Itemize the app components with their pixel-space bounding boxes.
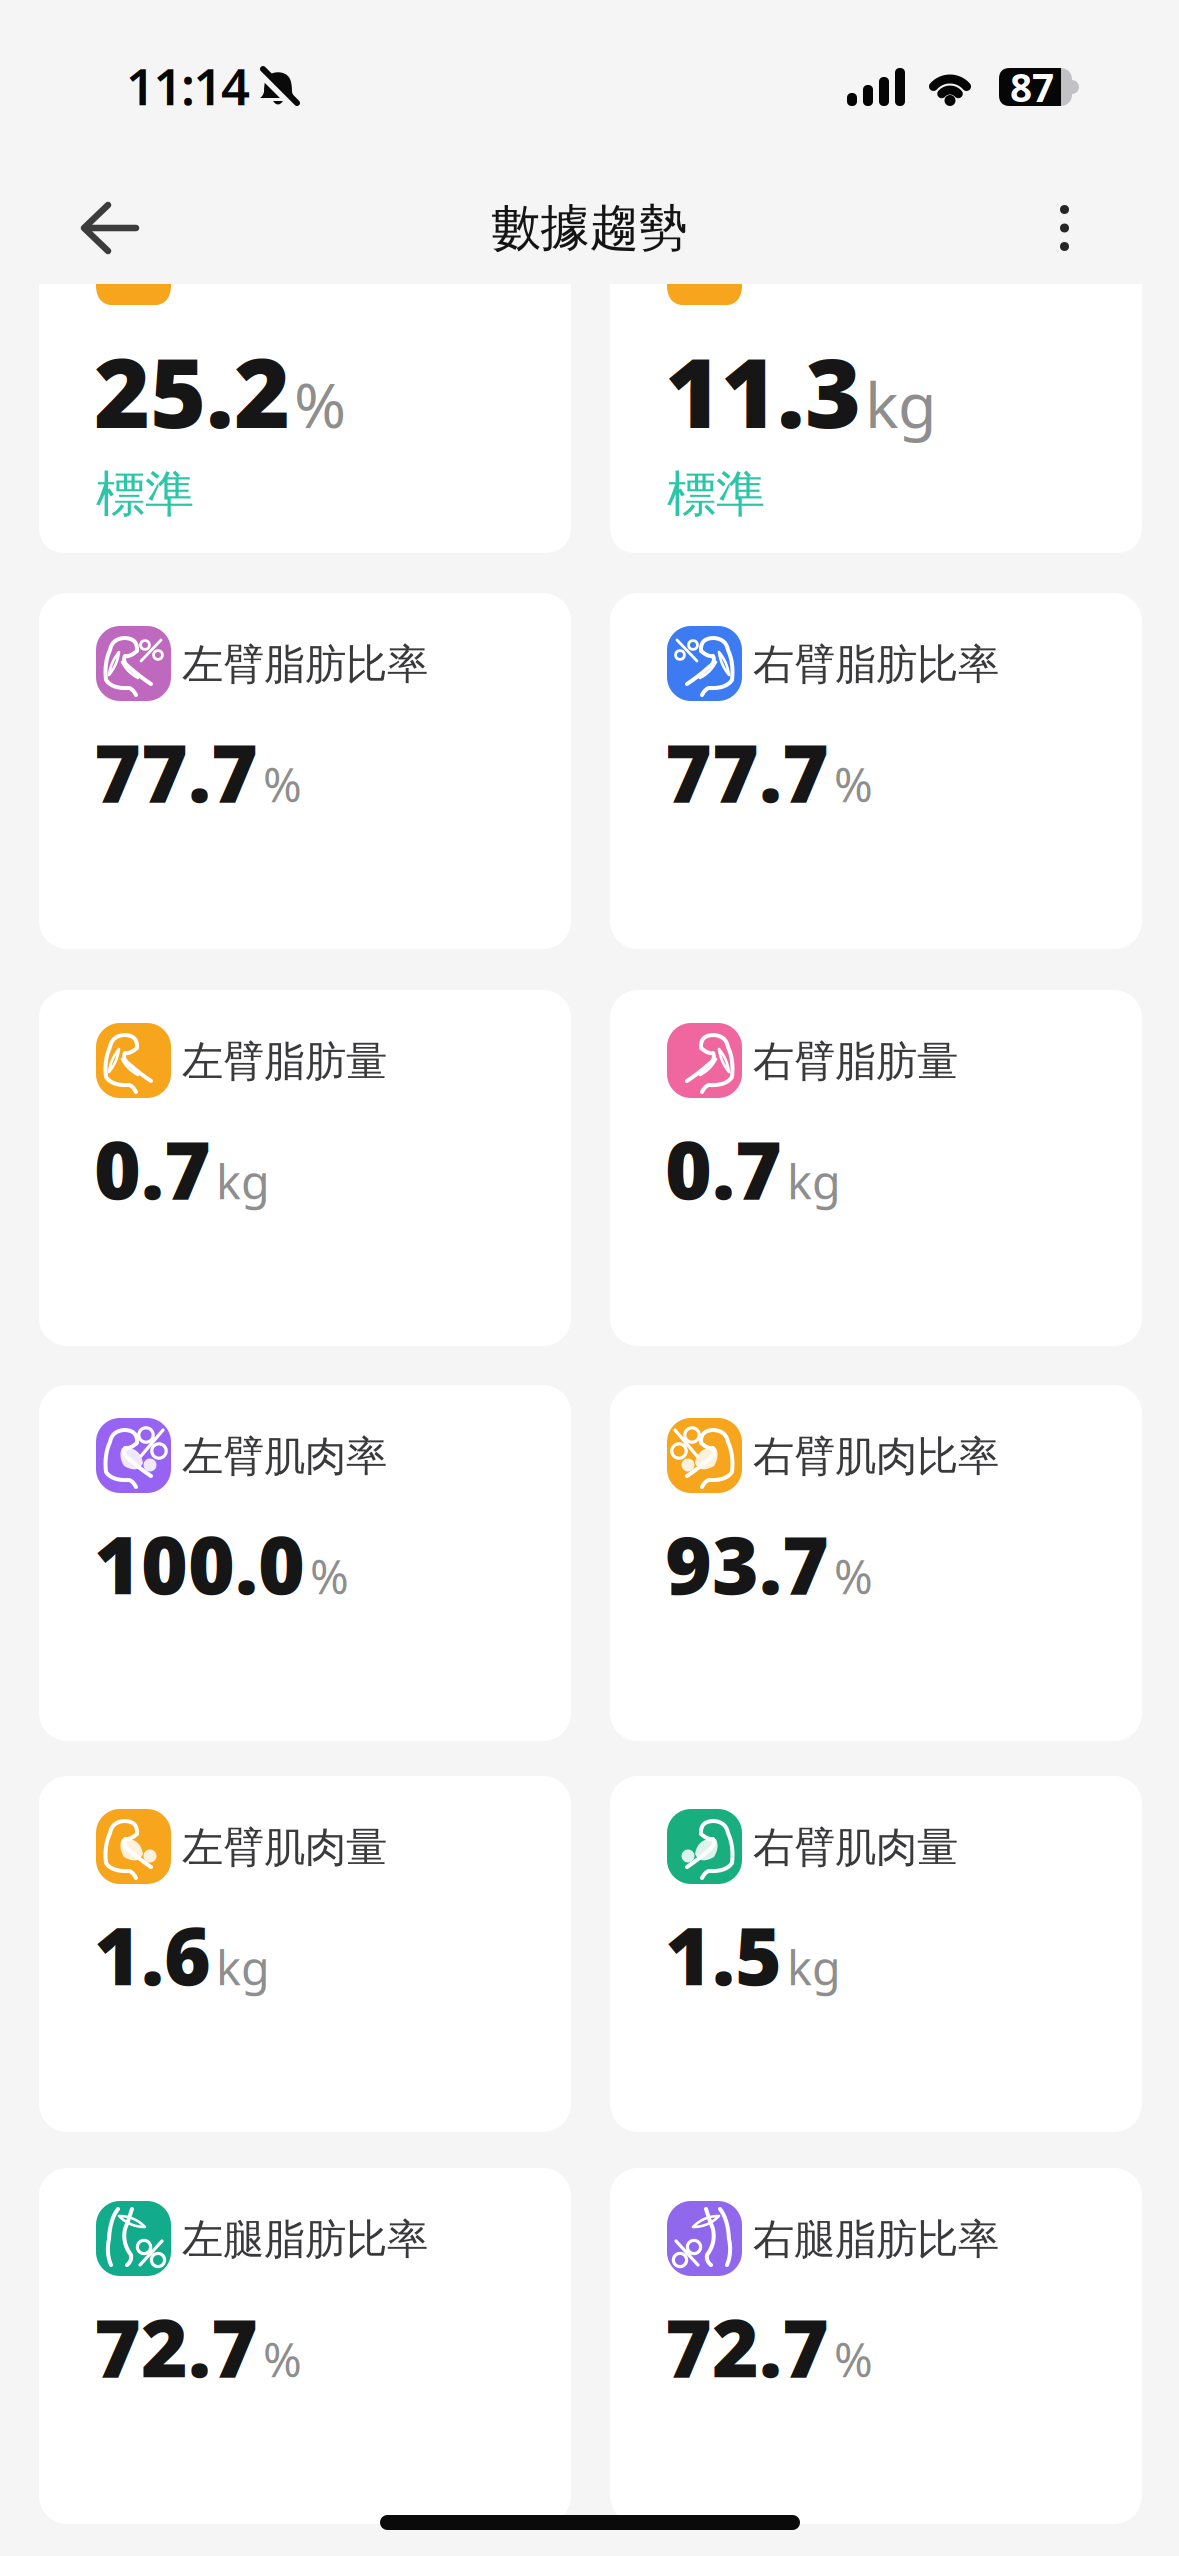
button[interactable]: 右臂肌肉比率 [610,1385,1142,1741]
staticText: kg [216,1936,270,1998]
staticText: 0.7 [94,1115,211,1221]
staticText: 右臂脂肪比率 [753,639,999,690]
staticText: 11.3 [665,327,861,454]
button[interactable]: 左臂脂肪比率 [39,593,571,949]
button[interactable]: 左臂肌肉量 [39,1776,571,2132]
staticText: kg [787,1150,841,1212]
staticText: 左臂脂肪量 [182,1036,387,1087]
button[interactable]: 25.2 [39,284,571,553]
button[interactable]: 右臂脂肪比率 [610,593,1142,949]
staticText: % [310,1545,349,1607]
staticText: % [294,362,346,445]
staticText: 左臂脂肪比率 [182,639,428,690]
staticText: kg [216,1150,270,1212]
staticText: % [263,753,302,815]
staticText: 左臂肌肉量 [182,1822,387,1873]
staticText: 數據趨勢 [491,198,687,258]
staticText: 11:14 [126,52,250,119]
staticText: kg [865,362,937,445]
staticText: % [263,2328,302,2390]
button[interactable]: 11.3 [610,284,1142,553]
staticText: 72.7 [94,2293,258,2399]
staticText: 0.7 [665,1115,782,1221]
staticText: 右臂脂肪量 [753,1036,958,1087]
staticText: 1.6 [94,1901,211,2007]
button[interactable]: 左臂肌肉率 [39,1385,571,1741]
staticText: 72.7 [665,2293,829,2399]
staticText: 25.2 [94,327,290,454]
staticText: 左腿脂肪比率 [182,2214,428,2265]
staticText: % [834,753,873,815]
staticText: 右腿脂肪比率 [753,2214,999,2265]
staticText: kg [787,1936,841,1998]
staticText: 標準 [96,464,194,525]
staticText: % [834,1545,873,1607]
staticText: 1.5 [665,1901,782,2007]
button[interactable]: 右臂肌肉量 [610,1776,1142,2132]
staticText: 左臂肌肉率 [182,1431,387,1482]
staticText: 右臂肌肉量 [753,1822,958,1873]
staticText: 77.7 [665,718,829,824]
staticText: % [834,2328,873,2390]
staticText: 100.0 [94,1510,305,1616]
staticText: 87 [1010,61,1054,113]
button[interactable]: 右臂脂肪量 [610,990,1142,1346]
button[interactable]: 右腿脂肪比率 [610,2168,1142,2524]
staticText: 右臂肌肉比率 [753,1431,999,1482]
staticText: 標準 [667,464,765,525]
button[interactable]: 左臂脂肪量 [39,990,571,1346]
staticText: 93.7 [665,1510,829,1616]
button[interactable]: 左腿脂肪比率 [39,2168,571,2524]
staticText: 77.7 [94,718,258,824]
